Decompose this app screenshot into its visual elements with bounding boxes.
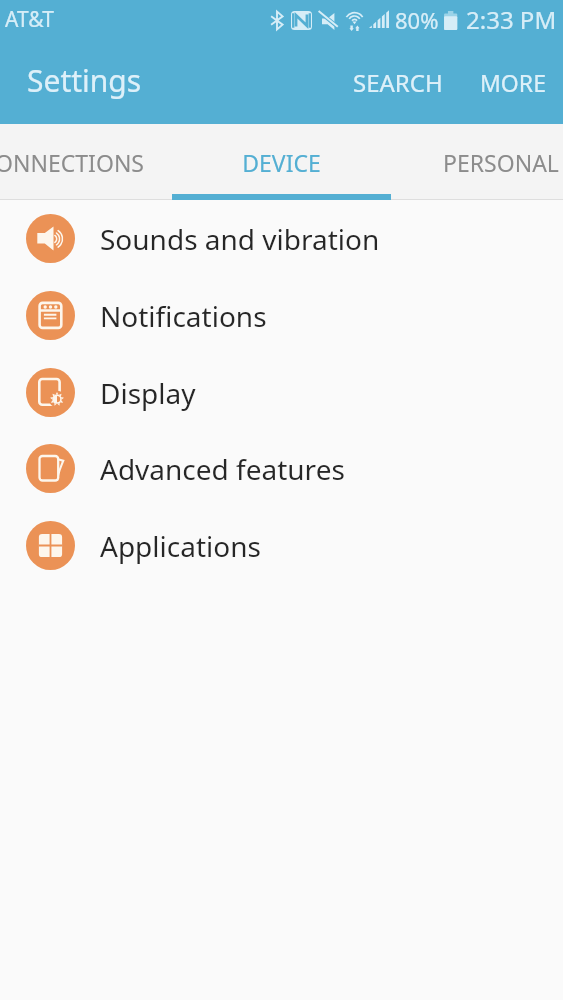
button[interactable]: CONNECTIONS [0,124,172,200]
staticText: Notifications [100,297,267,335]
button[interactable]: Sounds and vibration [0,200,563,277]
button[interactable]: Advanced features [0,430,563,507]
staticText: Applications [100,527,261,565]
staticText: DEVICE [242,147,321,178]
staticText: 80% [395,5,439,35]
staticText: PERSONAL [443,147,559,178]
staticText: SEARCH [353,66,443,99]
staticText: Advanced features [100,450,345,488]
button[interactable]: MORE [455,51,563,114]
button[interactable]: Display [0,354,563,431]
staticText: Sounds and vibration [100,220,380,258]
button[interactable]: SEARCH [341,50,455,115]
button[interactable]: Applications [0,507,563,584]
staticText: CONNECTIONS [0,147,144,178]
button[interactable]: Notifications [0,277,563,354]
staticText: AT&T [5,5,54,34]
staticText: MORE [480,67,546,98]
staticText: 2:33 PM [466,3,557,36]
staticText: Settings [27,60,142,101]
button[interactable]: PERSONAL [391,124,563,200]
staticText: Display [100,374,196,412]
button[interactable]: DEVICE [172,124,391,200]
